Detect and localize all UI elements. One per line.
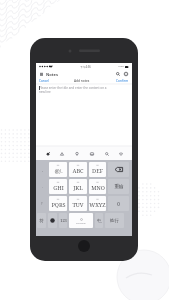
button[interactable]: ? <box>36 195 48 212</box>
button[interactable]: Cancel <box>39 79 49 83</box>
staticText: Personal <box>76 221 86 224</box>
button[interactable]: More options <box>123 71 129 77</box>
button[interactable]: Image <box>88 150 95 157</box>
button[interactable]: GHI <box>49 179 67 194</box>
button[interactable]: PQRS <box>49 196 67 211</box>
button[interactable]: Search <box>103 150 110 157</box>
button[interactable]: 换行 <box>105 213 124 228</box>
button[interactable]: Switch keyboard <box>48 213 57 228</box>
button[interactable]: JKL <box>69 179 87 194</box>
staticText: TUV <box>72 201 84 209</box>
staticText: , <box>42 168 43 172</box>
button[interactable]: Favorite <box>117 150 124 157</box>
staticText: 0 <box>117 201 120 207</box>
button[interactable]: 123 <box>59 213 67 228</box>
button[interactable]: DEF <box>89 162 106 177</box>
staticText: PQRS <box>51 201 66 209</box>
staticText: Confirm <box>116 79 129 83</box>
button[interactable]: 重输 <box>108 179 129 194</box>
button[interactable]: ABC <box>69 162 87 177</box>
staticText: 符 <box>39 218 44 224</box>
button[interactable]: TUV <box>69 196 87 211</box>
button[interactable]: Backspace <box>108 162 129 177</box>
staticText: 换行 <box>110 218 119 224</box>
button[interactable]: Personal <box>69 213 93 228</box>
staticText: . <box>42 185 43 189</box>
staticText: ABC <box>72 167 84 175</box>
button[interactable]: 中 <box>95 213 103 228</box>
staticText: Notes <box>46 72 58 77</box>
button[interactable]: 符 <box>37 213 46 228</box>
staticText: 中 <box>97 218 101 223</box>
staticText: 100% <box>118 65 124 68</box>
button[interactable]: 0 <box>108 196 129 211</box>
staticText: Please enter the title and enter the con… <box>39 86 107 94</box>
staticText: 123 <box>60 218 67 223</box>
staticText: GHI <box>53 184 64 192</box>
button[interactable]: WXYZ <box>89 196 106 211</box>
staticText: Cancel <box>39 79 49 83</box>
button[interactable]: @/. <box>49 162 67 177</box>
button[interactable]: Location <box>73 150 80 157</box>
button[interactable]: Search <box>115 71 121 77</box>
button[interactable]: Menu <box>39 71 44 77</box>
button[interactable]: Weather <box>58 150 65 157</box>
staticText: WXYZ <box>89 201 106 209</box>
button[interactable]: Confirm <box>116 79 129 83</box>
staticText: Add notes <box>74 79 90 83</box>
staticText: @/. <box>54 167 63 175</box>
staticText: ? <box>41 202 43 206</box>
staticText: 重输 <box>114 184 124 190</box>
staticText: DEF <box>92 167 103 175</box>
staticText: MNO <box>91 184 105 192</box>
button[interactable]: MNO <box>89 179 106 194</box>
button[interactable]: Draw <box>44 150 51 157</box>
staticText: 下午4:36 <box>80 65 91 69</box>
staticText: JKL <box>73 184 83 192</box>
